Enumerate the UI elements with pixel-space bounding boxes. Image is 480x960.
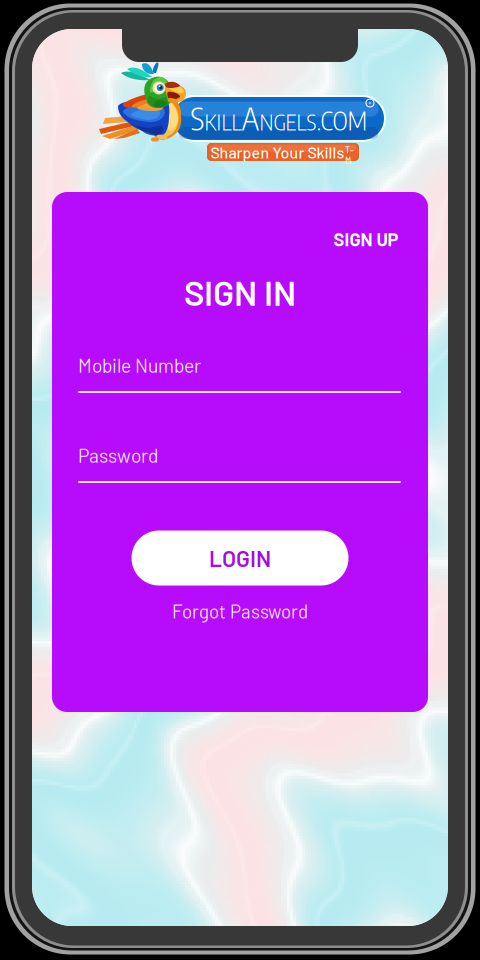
staticText: LOGIN (209, 544, 271, 572)
staticText: KILL (204, 108, 241, 135)
button[interactable]: SIGN UP (324, 219, 407, 259)
staticText: Sharpen Your Skills (210, 142, 344, 162)
button[interactable]: Forgot Password (166, 594, 314, 628)
staticText: A (241, 99, 259, 137)
staticText: NGELS (259, 108, 316, 135)
staticText: Mobile Number (78, 353, 201, 376)
staticText: S (190, 99, 204, 137)
staticText: SIGN UP (333, 228, 398, 250)
staticText: TM (345, 145, 353, 165)
staticText: .COM (316, 104, 367, 136)
staticText: Password (78, 443, 158, 466)
button[interactable]: LOGIN (131, 530, 348, 585)
staticText: Forgot Password (172, 600, 308, 622)
staticText: SIGN IN (184, 271, 296, 313)
